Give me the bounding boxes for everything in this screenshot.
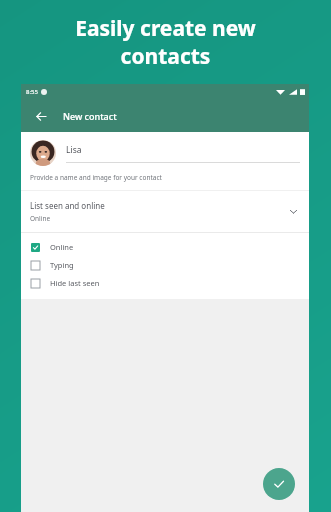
staticText: Online: [30, 214, 51, 223]
staticText: 8:55: [26, 88, 38, 96]
staticText: Lisa: [66, 144, 82, 156]
button[interactable]: Hide last seen: [21, 274, 309, 292]
button[interactable]: Contact photo: [30, 140, 56, 166]
staticText: Online: [50, 242, 74, 252]
staticText: List seen and online: [30, 200, 105, 211]
staticText: Easily create new contacts: [16, 14, 315, 70]
button[interactable]: Back: [30, 105, 52, 127]
button[interactable]: Online: [21, 238, 309, 256]
button[interactable]: Typing: [21, 256, 309, 274]
button[interactable]: List seen and online: [21, 191, 309, 232]
staticText: Hide last seen: [50, 278, 100, 288]
staticText: Provide a name and image for your contac…: [30, 173, 162, 182]
button[interactable]: Save contact: [263, 468, 295, 500]
staticText: Typing: [50, 260, 74, 270]
staticText: New contact: [63, 110, 117, 122]
